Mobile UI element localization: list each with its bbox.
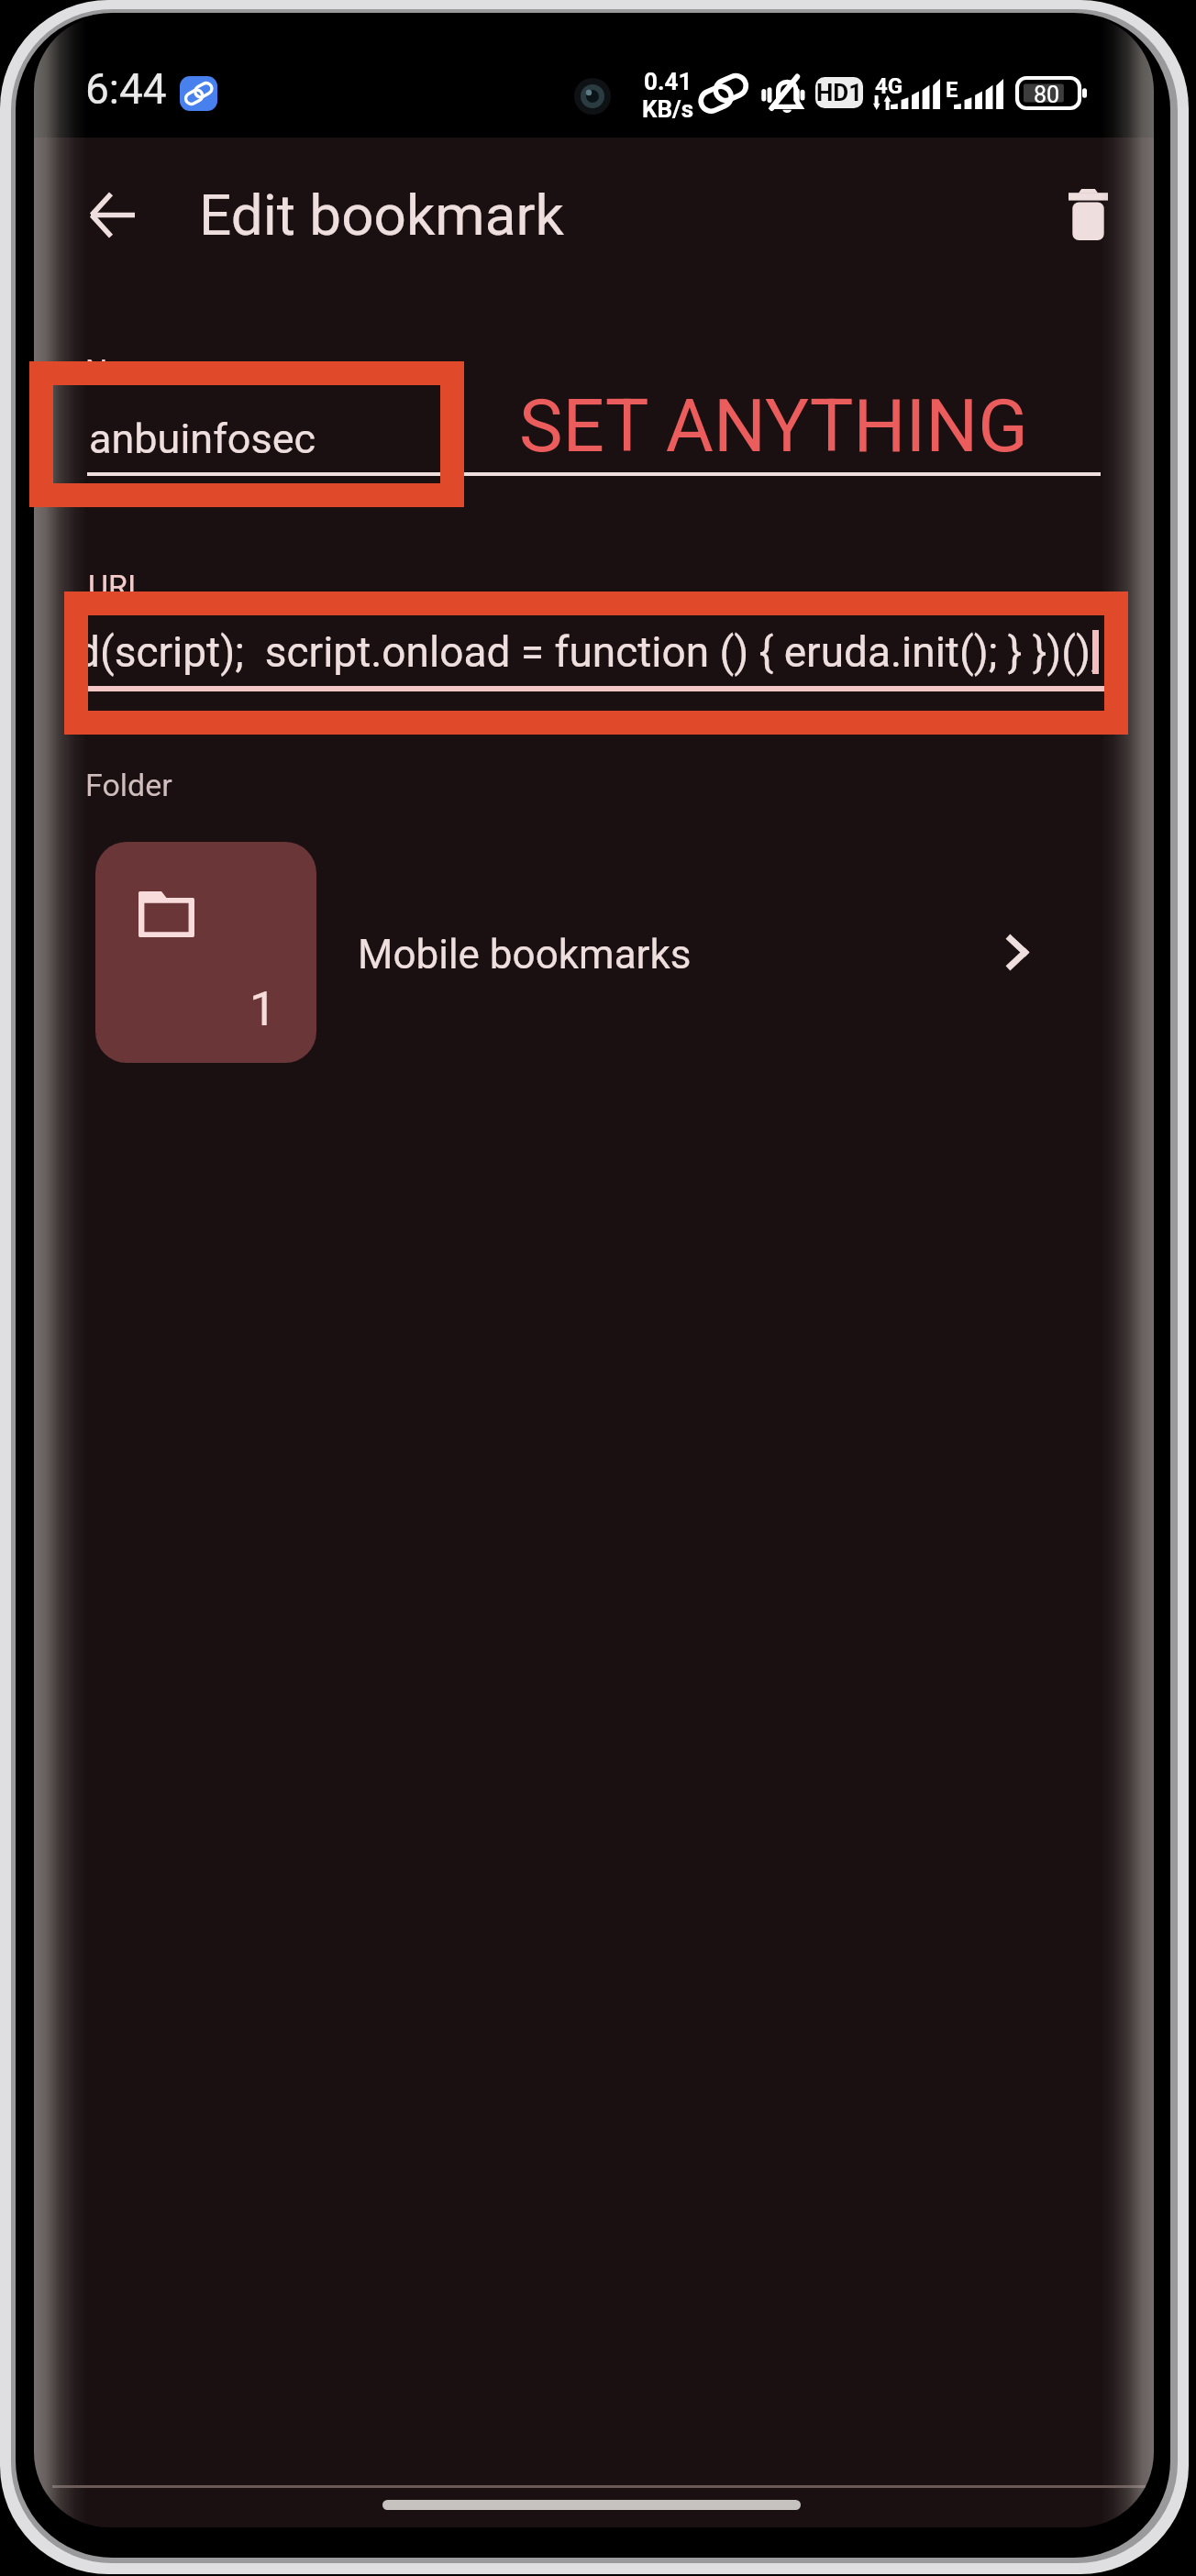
staticText: KB/s (642, 95, 694, 123)
button[interactable]: Back (68, 171, 156, 259)
button[interactable]: Delete bookmark (1046, 172, 1130, 257)
staticText: anbuinfosec (89, 415, 316, 463)
staticText: 1 (249, 981, 277, 1037)
staticText: 4G (875, 73, 903, 99)
staticText: 80 (1034, 82, 1060, 108)
staticText: E (946, 77, 958, 103)
staticText: HD1 (816, 79, 863, 106)
staticText: 0.41 (644, 68, 692, 95)
staticText: Edit bookmark (199, 182, 564, 249)
staticText: 6:44 (85, 64, 167, 114)
button[interactable]: URI (87, 558, 1105, 691)
staticText: Folder (85, 767, 172, 803)
staticText: d(script); script.onload = function () {… (88, 627, 1093, 677)
staticText: SET ANYTHING (519, 383, 1028, 470)
button[interactable]: 1 (57, 830, 1121, 1073)
button[interactable]: Name (87, 345, 1101, 477)
staticText: URI (88, 568, 137, 604)
staticText: Name (85, 352, 169, 389)
staticText: Mobile bookmarks (358, 931, 692, 978)
